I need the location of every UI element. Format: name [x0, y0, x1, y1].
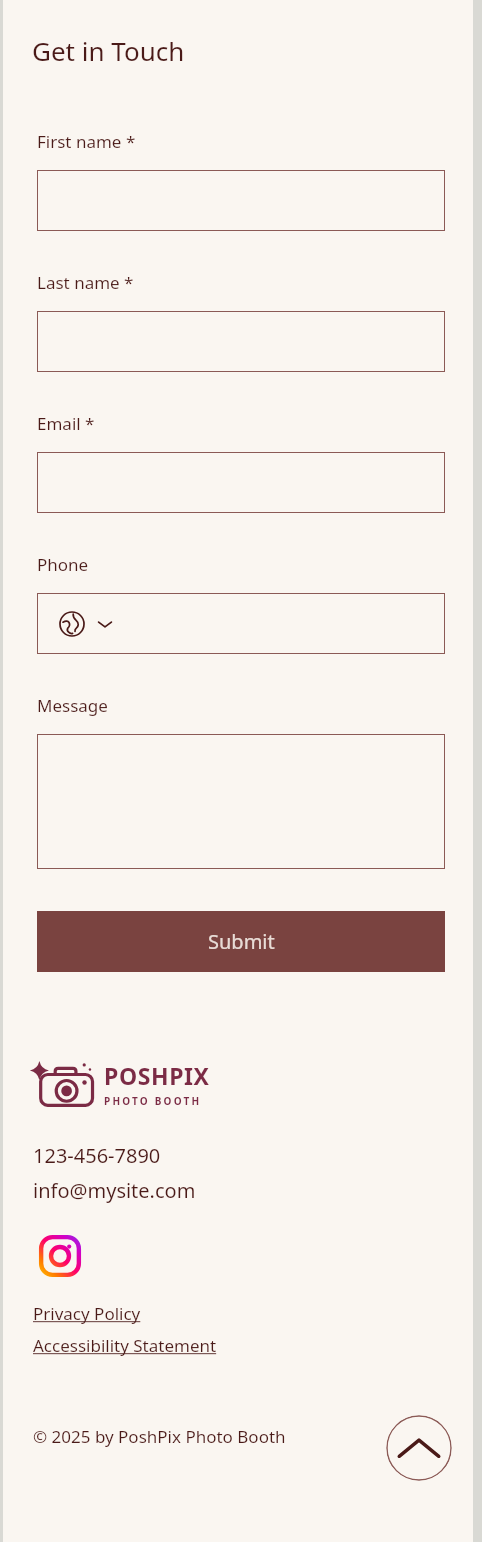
staticText: Get in Touch [32, 33, 185, 68]
staticText: Email * [37, 412, 95, 435]
staticText: Phone [37, 553, 89, 576]
staticText: © 2025 by PoshPix Photo Booth [33, 1425, 286, 1448]
staticText: info@mysite.com [33, 1177, 196, 1204]
button[interactable] [37, 452, 445, 513]
button[interactable]: Accessibility Statement [33, 1334, 217, 1357]
staticText: Submit [208, 928, 275, 955]
staticText: Message [37, 694, 108, 717]
staticText: PHOTO BOOTH [104, 1094, 202, 1108]
button[interactable] [37, 734, 445, 869]
button[interactable]: Instagram [36, 1232, 84, 1280]
staticText: First name * [37, 130, 136, 153]
button[interactable]: Submit [37, 911, 445, 972]
button[interactable] [37, 170, 445, 231]
staticText: Privacy Policy [33, 1302, 141, 1325]
staticText: 123-456-7890 [33, 1142, 161, 1169]
staticText: Accessibility Statement [33, 1334, 217, 1357]
button[interactable] [37, 593, 445, 654]
staticText: Last name * [37, 271, 134, 294]
button[interactable]: Privacy Policy [33, 1302, 141, 1325]
button[interactable] [37, 311, 445, 372]
button[interactable]: Scroll to top [386, 1415, 452, 1481]
staticText: POSHPIX [104, 1060, 210, 1091]
